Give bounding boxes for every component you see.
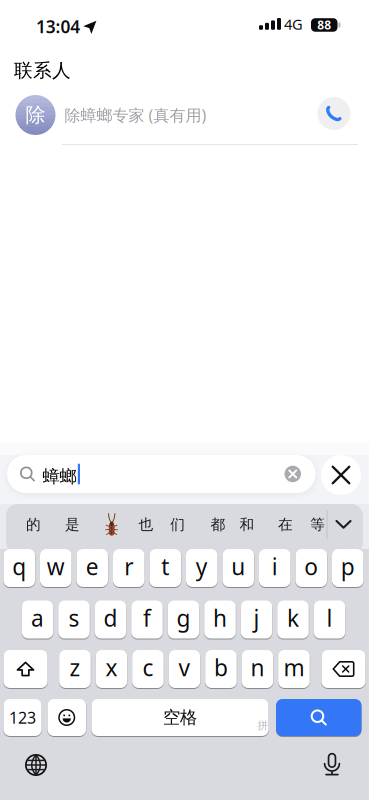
button[interactable]: d [95, 600, 126, 638]
staticText: g [176, 603, 190, 633]
button[interactable]: Call [317, 97, 350, 130]
staticText: i [272, 551, 278, 581]
staticText: k [287, 603, 299, 633]
staticText: z [69, 652, 80, 682]
staticText: e [86, 551, 99, 581]
button[interactable]: Clear text [284, 466, 301, 482]
staticText: 们 [170, 515, 185, 533]
button[interactable]: a [22, 600, 53, 638]
staticText: 等 [310, 515, 325, 533]
button[interactable]: Emoji [47, 699, 86, 736]
button[interactable]: x [96, 650, 127, 688]
button[interactable]: 除 [15, 91, 315, 139]
staticText: 蟑螂 [42, 466, 76, 487]
staticText: v [178, 652, 190, 682]
button[interactable]: j [241, 600, 272, 638]
staticText: x [105, 652, 117, 682]
staticText: b [214, 652, 228, 682]
staticText: s [68, 603, 79, 633]
button[interactable]: 们 [163, 504, 193, 544]
staticText: c [142, 652, 153, 682]
button[interactable]: q [3, 549, 35, 587]
button[interactable]: p [332, 549, 363, 587]
staticText: 的 [26, 515, 41, 533]
button[interactable]: r [113, 549, 144, 587]
button[interactable]: o [295, 549, 327, 587]
button[interactable]: 和 [232, 504, 262, 544]
staticText: t [161, 551, 169, 581]
button[interactable]: m [278, 650, 310, 688]
staticText: o [304, 551, 318, 581]
button[interactable]: n [242, 650, 273, 688]
staticText: p [341, 551, 355, 581]
button[interactable]: e [76, 549, 108, 587]
staticText: r [124, 551, 133, 581]
button[interactable]: 蟑螂 emoji [99, 503, 125, 545]
button[interactable]: 的 [18, 504, 48, 544]
button[interactable]: f [131, 600, 163, 638]
button[interactable]: Dictation [315, 747, 349, 781]
staticText: y [196, 551, 208, 581]
button[interactable]: b [205, 650, 237, 688]
staticText: 除蟑螂专家 (真有用) [64, 104, 206, 126]
staticText: d [103, 603, 117, 633]
button[interactable]: Close [321, 455, 361, 495]
button[interactable]: Delete [321, 650, 365, 688]
button[interactable]: i [259, 549, 290, 587]
staticText: 13:04 [36, 15, 80, 38]
button[interactable]: u [222, 549, 254, 587]
button[interactable]: Shift [3, 650, 47, 688]
staticText: h [213, 603, 227, 633]
button[interactable]: 都 [203, 504, 233, 544]
staticText: 除 [25, 103, 45, 127]
staticText: 是 [65, 515, 80, 533]
staticText: n [250, 652, 264, 682]
button[interactable]: y [186, 549, 217, 587]
staticText: 空格 [163, 707, 197, 728]
button[interactable]: 空格 [91, 699, 268, 736]
button[interactable]: k [277, 600, 309, 638]
button[interactable]: c [132, 650, 164, 688]
staticText: 拼 [257, 719, 268, 732]
button[interactable]: 123 [3, 699, 41, 736]
staticText: l [326, 603, 332, 633]
button[interactable]: Search [276, 699, 361, 736]
staticText: m [283, 652, 304, 682]
button[interactable]: w [40, 549, 71, 587]
button[interactable]: 是 [57, 504, 87, 544]
staticText: 也 [138, 515, 153, 533]
button[interactable]: g [168, 600, 199, 638]
staticText: 在 [278, 515, 293, 533]
button[interactable]: More candidates [328, 504, 358, 544]
staticText: 88 [317, 17, 331, 33]
button[interactable]: h [204, 600, 236, 638]
staticText: 4G [284, 14, 303, 34]
button[interactable]: t [149, 549, 181, 587]
button[interactable]: 也 [131, 504, 161, 544]
staticText: 联系人 [14, 59, 71, 82]
button[interactable]: s [58, 600, 90, 638]
staticText: u [231, 551, 245, 581]
button[interactable]: 在 [270, 504, 300, 544]
staticText: j [253, 603, 259, 633]
staticText: q [12, 551, 26, 581]
button[interactable]: v [169, 650, 200, 688]
button[interactable]: z [59, 650, 91, 688]
staticText: 123 [9, 707, 36, 728]
staticText: a [31, 603, 44, 633]
staticText: f [143, 603, 151, 633]
button[interactable]: 等 [303, 504, 333, 544]
staticText: w [47, 551, 65, 581]
button[interactable]: Next keyboard [19, 748, 53, 782]
staticText: 和 [239, 515, 254, 533]
staticText: 都 [210, 515, 225, 533]
button[interactable]: l [314, 600, 345, 638]
